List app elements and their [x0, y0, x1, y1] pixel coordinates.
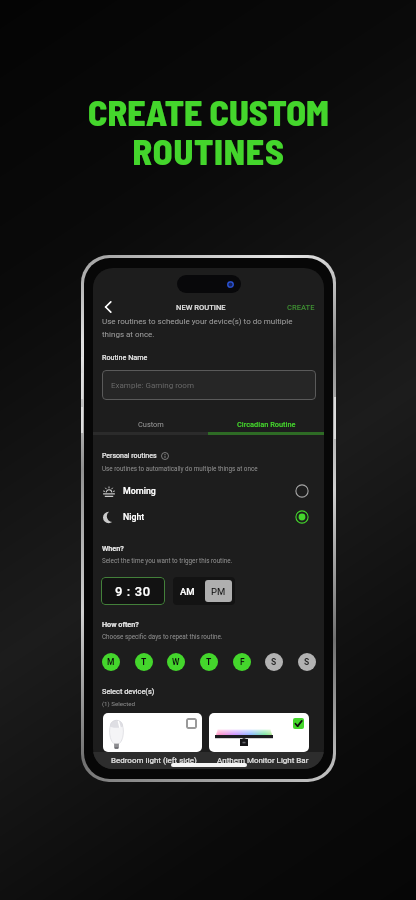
button[interactable]: Circadian Routine — [208, 415, 324, 434]
staticText: Bedroom light (left side) — [111, 756, 197, 765]
staticText: Use routines to automatically do multipl… — [102, 465, 258, 472]
staticText: Select the time you want to trigger this… — [102, 557, 233, 564]
staticText: F — [240, 657, 245, 667]
staticText: T — [206, 657, 212, 667]
button[interactable]: T — [200, 653, 218, 671]
staticText: Custom — [138, 420, 164, 429]
button[interactable]: Custom — [93, 415, 208, 434]
staticText: S — [304, 657, 310, 667]
staticText: Routine Name — [102, 353, 148, 361]
button[interactable]: S — [298, 653, 316, 671]
button[interactable]: AM — [173, 577, 202, 605]
button[interactable]: Morning — [102, 482, 309, 500]
button[interactable]: M — [102, 653, 120, 671]
button[interactable]: Night — [102, 508, 309, 526]
button[interactable]: S — [265, 653, 283, 671]
staticText: Personal routines — [102, 452, 157, 460]
staticText: When? — [102, 544, 124, 552]
staticText: NEW ROUTINE — [176, 303, 226, 312]
staticText: S — [271, 657, 277, 667]
staticText: Anthem Monitor Light Bar — [217, 756, 309, 765]
staticText: 9 : 30 — [115, 584, 151, 599]
staticText: Morning — [123, 486, 156, 496]
button[interactable]: PM — [205, 580, 232, 602]
button[interactable]: Example: Gaming room — [102, 370, 316, 400]
button[interactable]: CREATE — [285, 301, 317, 314]
staticText: AM — [180, 586, 195, 597]
button[interactable]: 9 : 30 — [101, 577, 165, 605]
staticText: Night — [123, 512, 145, 522]
button[interactable] — [103, 713, 202, 752]
staticText: How often? — [102, 620, 139, 628]
staticText: Choose specific days to repeat this rout… — [102, 633, 223, 640]
staticText: (1) Selected — [102, 700, 136, 707]
staticText: T — [141, 657, 147, 667]
staticText: ROUTINES — [132, 129, 285, 172]
staticText: CREATE CUSTOM — [88, 90, 329, 133]
button[interactable] — [209, 713, 309, 752]
staticText: Select device(s) — [102, 687, 155, 696]
staticText: Use routines to schedule your device(s) … — [102, 317, 293, 339]
staticText: W — [172, 657, 180, 667]
staticText: M — [107, 657, 115, 667]
staticText: Circadian Routine — [237, 420, 296, 429]
button[interactable]: F — [233, 653, 251, 671]
button[interactable]: W — [167, 653, 185, 671]
staticText: Example: Gaming room — [111, 381, 194, 390]
button[interactable]: Back — [100, 299, 116, 315]
button[interactable]: T — [135, 653, 153, 671]
staticText: CREATE — [287, 303, 315, 312]
staticText: PM — [211, 586, 226, 597]
